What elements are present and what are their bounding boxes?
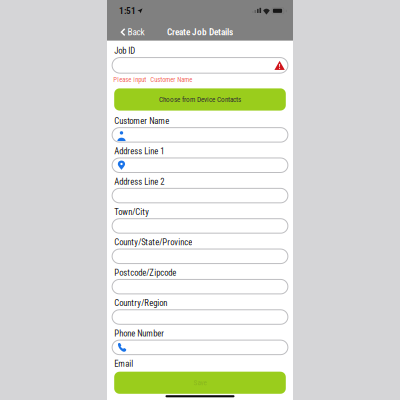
staticText: Save xyxy=(193,378,206,387)
staticText: Address Line 1 xyxy=(114,146,164,156)
button[interactable]: Choose from Device Contacts xyxy=(114,88,286,111)
button[interactable] xyxy=(112,249,288,264)
staticText: Town/City xyxy=(114,207,149,217)
button[interactable] xyxy=(112,310,288,324)
button[interactable]: Back xyxy=(117,21,147,41)
staticText: Country/Region xyxy=(114,298,167,308)
button[interactable] xyxy=(112,340,288,355)
button[interactable] xyxy=(112,188,288,203)
staticText: Choose from Device Contacts xyxy=(159,95,241,104)
staticText: Address Line 2 xyxy=(114,177,164,187)
staticText: Please input Customer Name xyxy=(113,76,192,84)
staticText: Phone Number xyxy=(114,328,164,339)
staticText: Postcode/Zipcode xyxy=(114,268,176,278)
staticText: Create Job Details xyxy=(167,27,233,37)
staticText: Back xyxy=(127,27,144,37)
staticText: Job ID xyxy=(114,46,135,56)
staticText: Customer Name xyxy=(114,116,169,126)
button[interactable]: Save xyxy=(114,372,286,394)
button[interactable] xyxy=(112,158,288,172)
button[interactable] xyxy=(112,219,288,233)
button[interactable] xyxy=(112,58,288,73)
staticText: County/State/Province xyxy=(114,237,192,247)
button[interactable] xyxy=(112,279,288,294)
button[interactable] xyxy=(112,128,288,142)
staticText: 1:51 xyxy=(119,5,136,16)
staticText: Email xyxy=(114,359,133,369)
